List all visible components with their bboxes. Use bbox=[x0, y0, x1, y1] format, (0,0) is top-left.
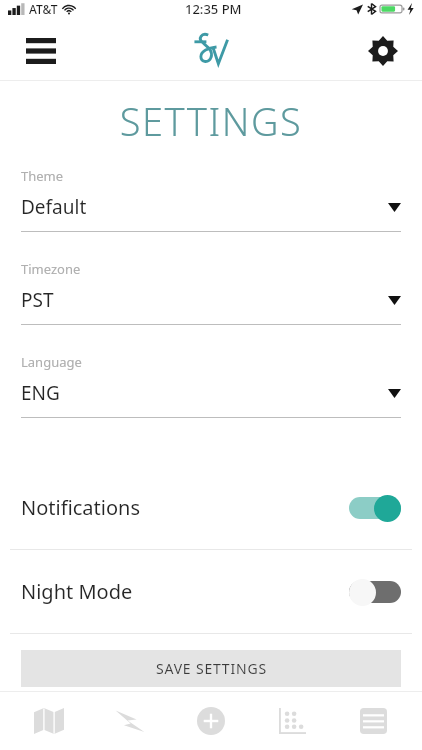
staticText: SETTINGS bbox=[0, 95, 422, 147]
button[interactable]: Map bbox=[17, 692, 81, 750]
staticText: Default bbox=[21, 194, 87, 220]
staticText: Night Mode bbox=[21, 578, 133, 605]
staticText: Theme bbox=[21, 167, 64, 185]
staticText: Notifications bbox=[21, 494, 140, 521]
button[interactable]: List bbox=[341, 692, 405, 750]
button[interactable]: Add bbox=[179, 692, 243, 750]
button[interactable]: Language bbox=[0, 353, 422, 418]
staticText: ENG bbox=[21, 380, 60, 406]
staticText: AT&T bbox=[29, 1, 58, 17]
button[interactable]: Stats bbox=[260, 692, 324, 750]
button[interactable]: Notifications bbox=[0, 466, 422, 549]
staticText: SAVE SETTINGS bbox=[156, 659, 267, 678]
staticText: 12:35 PM bbox=[185, 0, 242, 18]
button[interactable]: Settings bbox=[362, 30, 404, 72]
button[interactable]: Menu bbox=[20, 30, 62, 72]
staticText: Timezone bbox=[21, 260, 81, 278]
button[interactable]: SAVE SETTINGS bbox=[21, 650, 401, 687]
staticText: Language bbox=[21, 353, 82, 371]
button[interactable]: Night Mode bbox=[0, 550, 422, 633]
button[interactable]: Activity bbox=[98, 692, 162, 750]
staticText: PST bbox=[21, 287, 54, 313]
button[interactable]: Theme bbox=[0, 167, 422, 232]
button[interactable]: Timezone bbox=[0, 260, 422, 325]
